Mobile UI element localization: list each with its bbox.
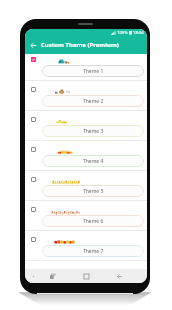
staticText: Custom Theme (Premium) bbox=[41, 41, 119, 49]
button[interactable]: Theme 6 bbox=[25, 204, 147, 234]
button[interactable]: Theme 2 bbox=[25, 84, 147, 114]
button[interactable]: Theme 5 bbox=[25, 174, 147, 204]
staticText: Theme 5 bbox=[83, 188, 104, 195]
button[interactable]: Recents bbox=[47, 271, 58, 282]
button[interactable]: Theme 3 bbox=[25, 114, 147, 144]
staticText: Theme 1 bbox=[83, 68, 104, 75]
button[interactable]: Theme 1 bbox=[25, 54, 147, 84]
staticText: Theme 6 bbox=[83, 218, 104, 225]
staticText: Theme 3 bbox=[83, 128, 104, 135]
staticText: 18:04 bbox=[133, 30, 144, 36]
staticText: 100% bbox=[117, 30, 128, 36]
button[interactable]: Theme 4 bbox=[25, 144, 147, 174]
button[interactable]: Back bbox=[25, 37, 41, 53]
button[interactable]: Back bbox=[114, 271, 125, 282]
staticText: Theme 7 bbox=[83, 248, 104, 255]
button[interactable]: Theme 7 bbox=[25, 234, 147, 264]
staticText: Theme 4 bbox=[83, 158, 104, 165]
button[interactable]: Home bbox=[81, 271, 92, 282]
staticText: Theme 2 bbox=[83, 98, 104, 105]
